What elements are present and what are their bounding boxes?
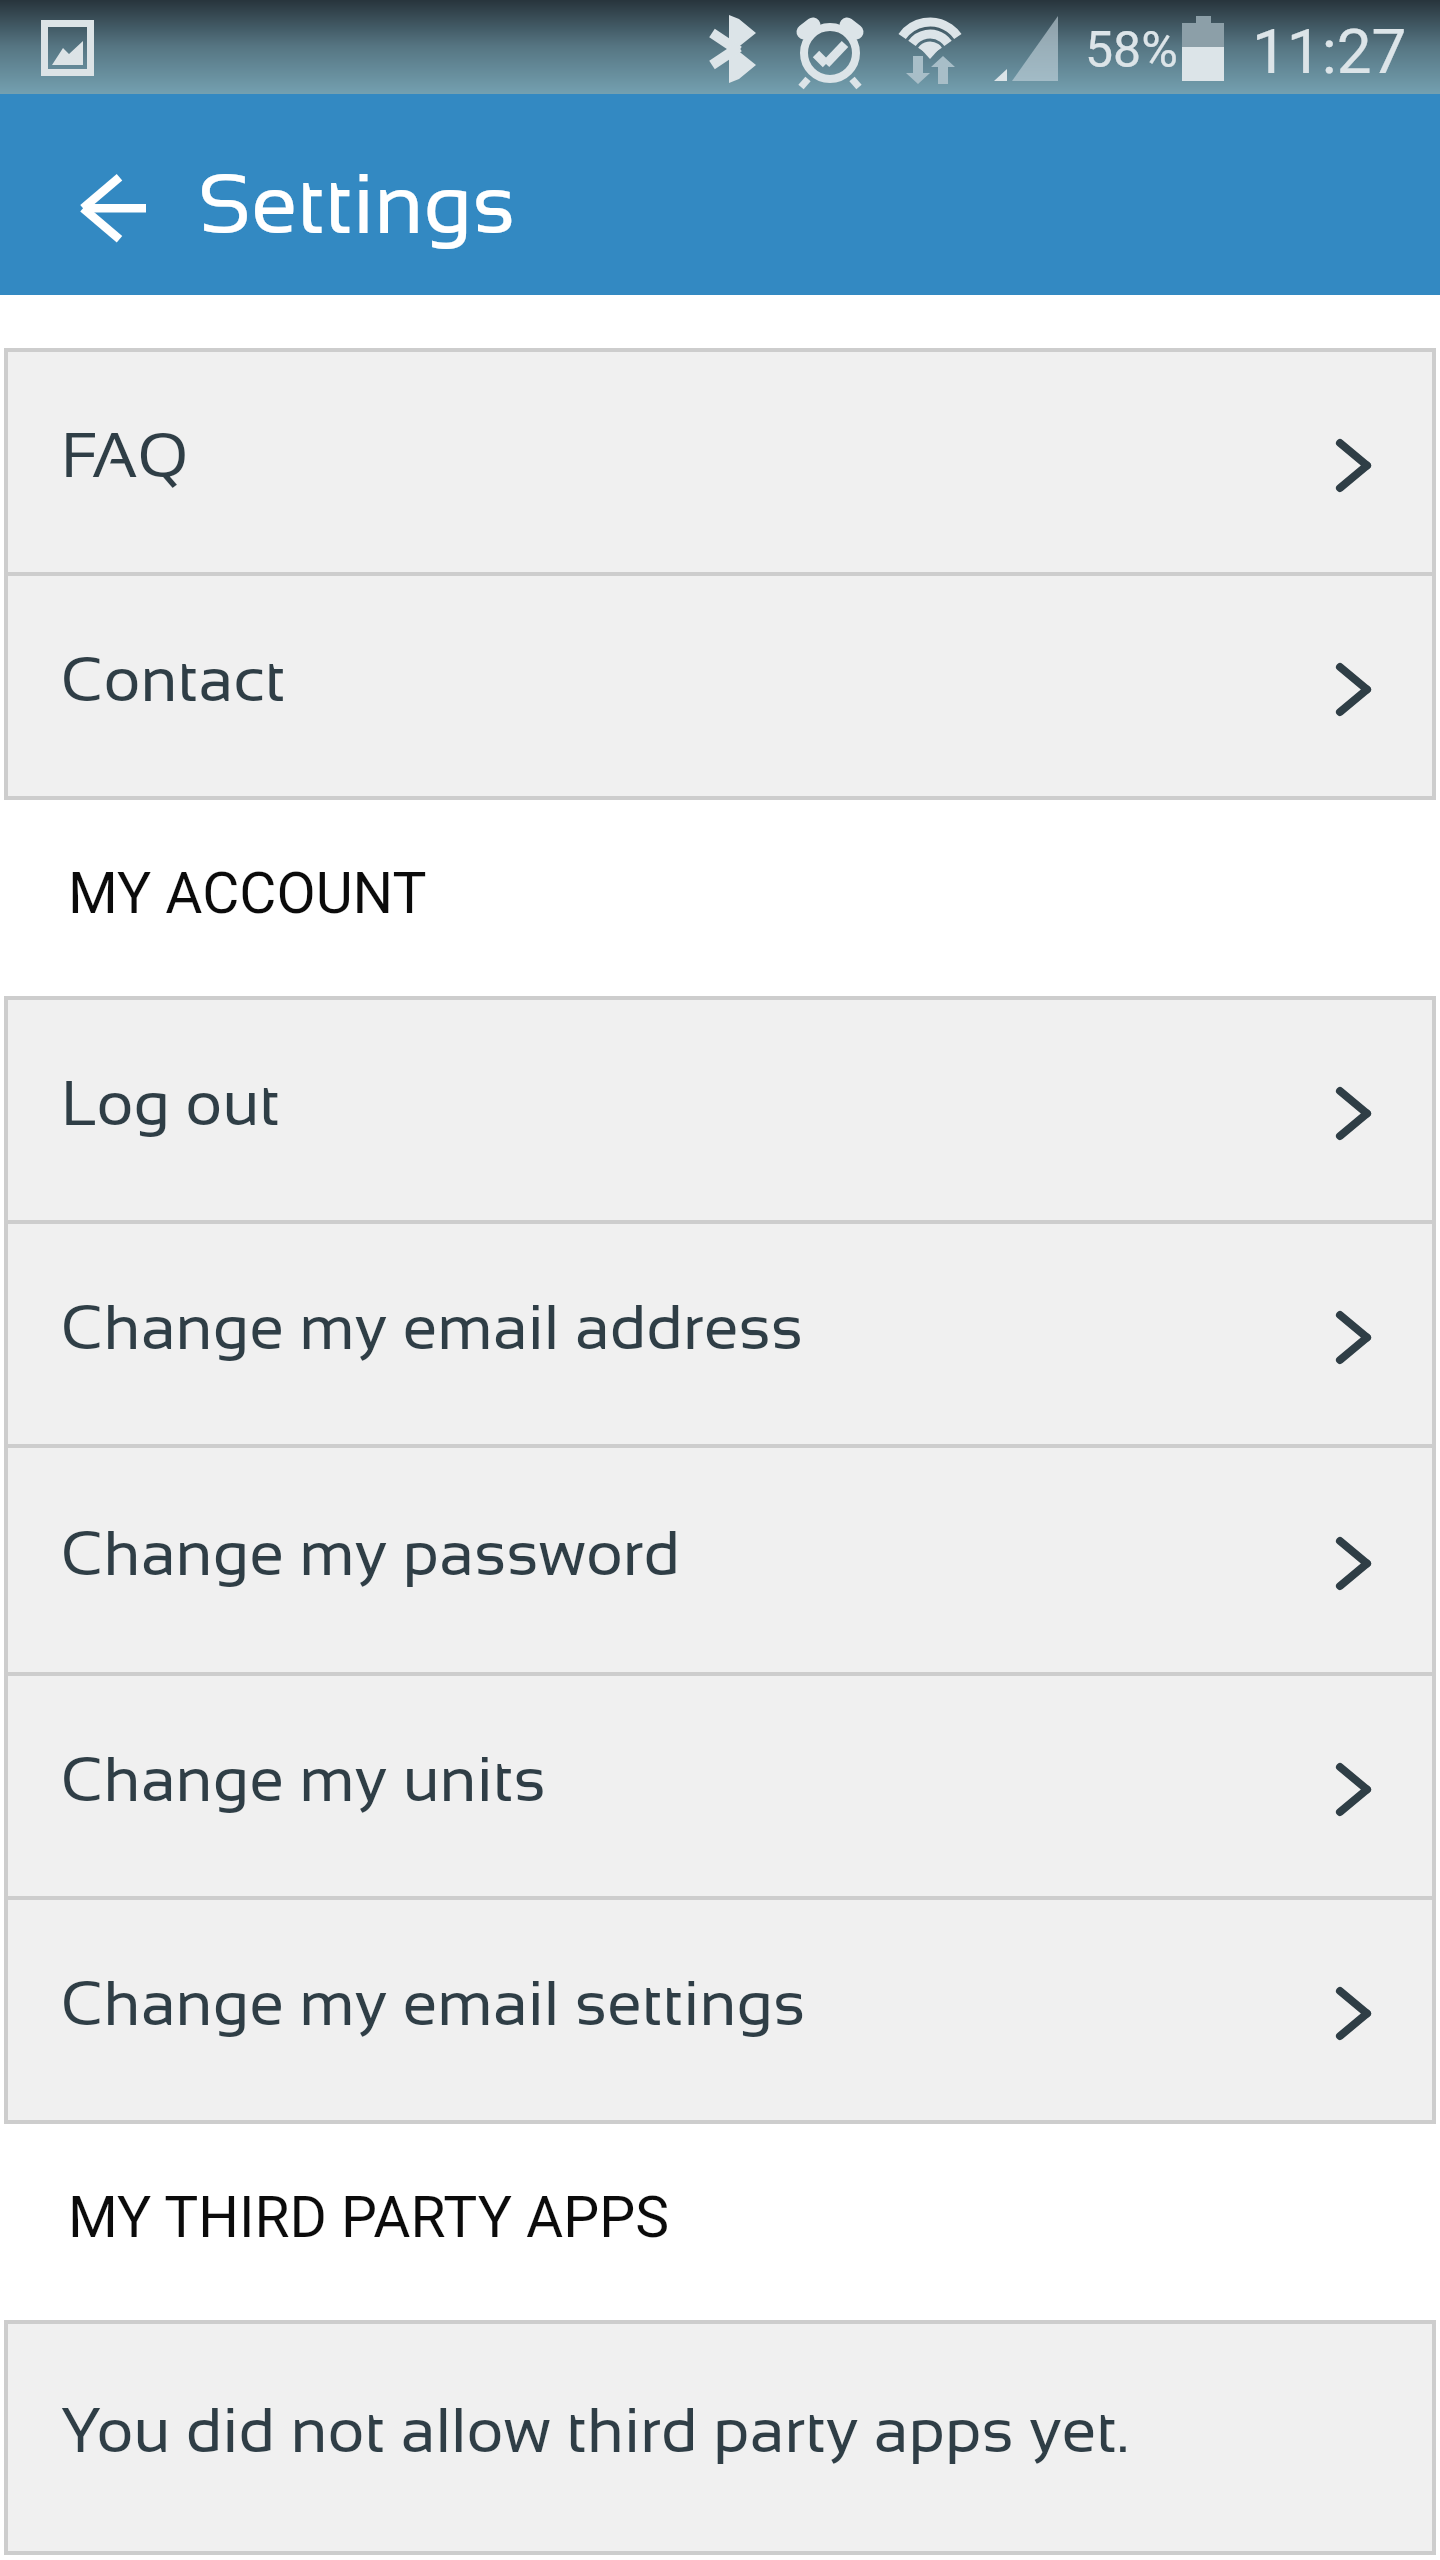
button[interactable]: Change my email settings xyxy=(8,1900,1432,2120)
staticText: You did not allow third party apps yet. xyxy=(61,2395,1129,2466)
button[interactable]: Contact xyxy=(8,576,1432,796)
staticText: 58% xyxy=(1085,21,1178,80)
button[interactable]: Change my units xyxy=(8,1676,1432,1896)
staticText: Contact xyxy=(61,644,286,715)
button[interactable]: Change my password xyxy=(8,1448,1432,1672)
staticText: FAQ xyxy=(61,420,189,491)
staticText: Settings xyxy=(198,157,516,251)
button[interactable]: Log out xyxy=(8,1000,1432,1220)
staticText: 11:27 xyxy=(1252,15,1407,88)
button[interactable]: Change my email address xyxy=(8,1224,1432,1444)
staticText: Change my email address xyxy=(61,1292,804,1363)
staticText: Change my units xyxy=(61,1744,546,1815)
button[interactable]: Navigate up xyxy=(65,174,159,268)
staticText: MY ACCOUNT xyxy=(68,860,427,927)
staticText: MY THIRD PARTY APPS xyxy=(68,2184,670,2251)
staticText: Change my email settings xyxy=(61,1968,806,2039)
staticText: Change my password xyxy=(61,1518,681,1589)
staticText: Log out xyxy=(61,1068,281,1139)
button[interactable]: FAQ xyxy=(8,352,1432,572)
